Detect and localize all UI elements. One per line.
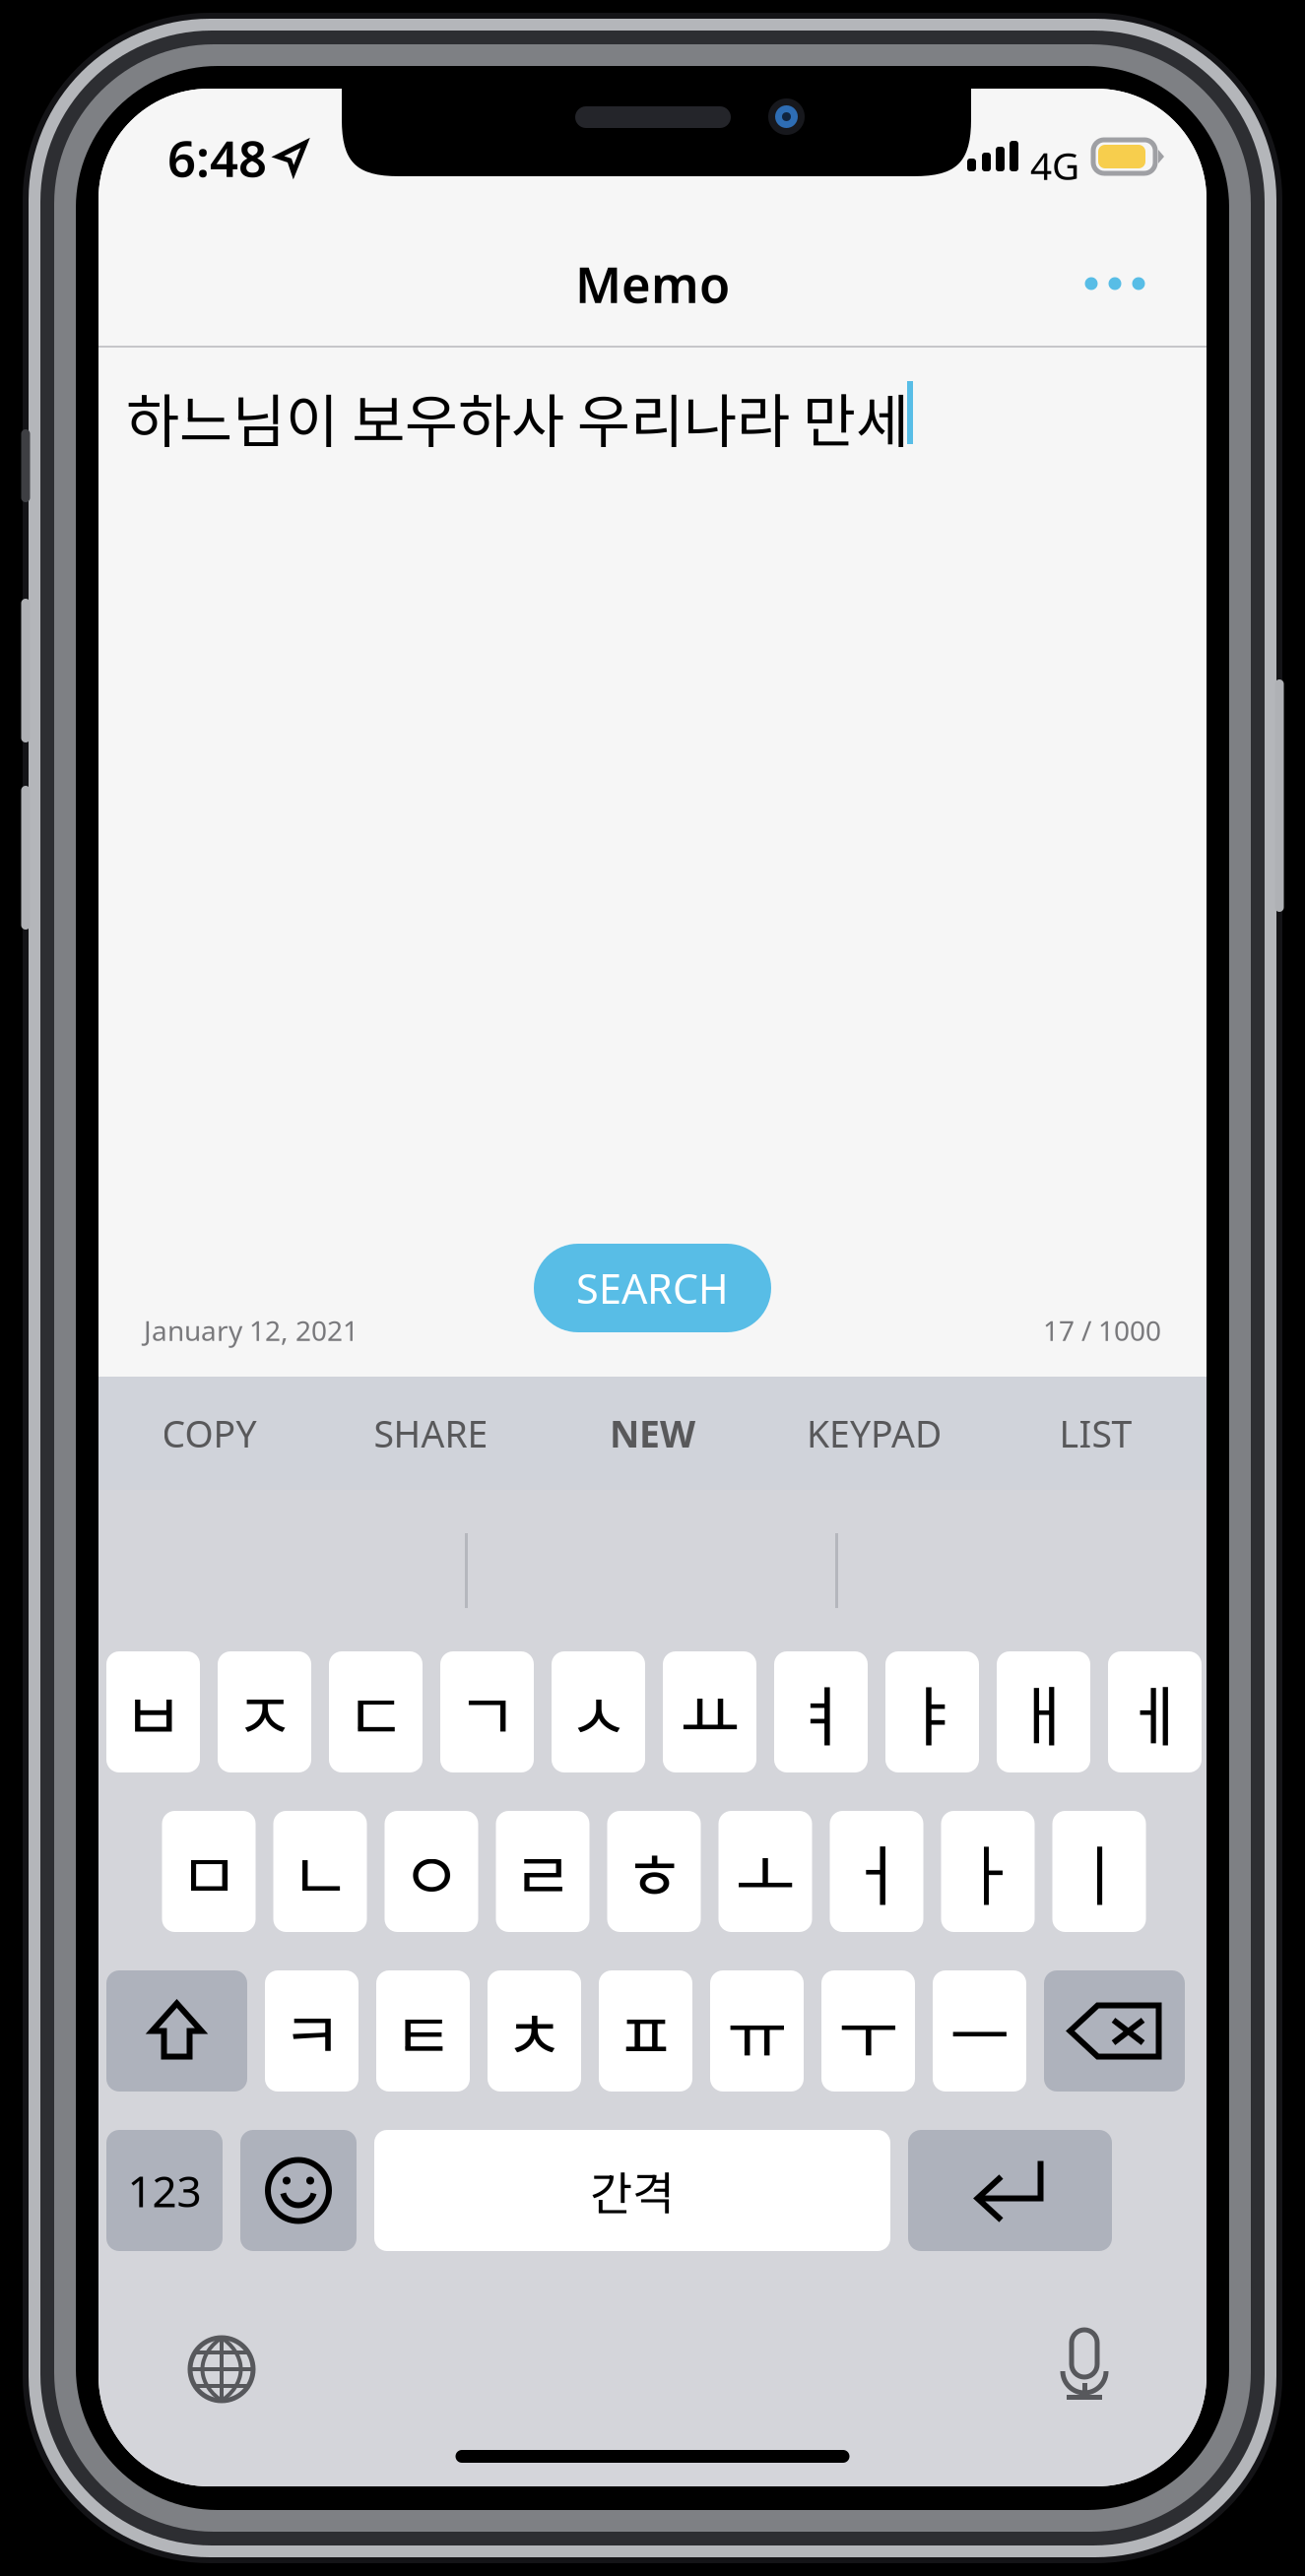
staticText: ㄱ bbox=[457, 1664, 517, 1759]
staticText: ㅡ bbox=[949, 1983, 1010, 2078]
button[interactable]: ㅌ bbox=[376, 1970, 470, 2092]
button[interactable]: NEW bbox=[542, 1377, 763, 1490]
staticText: ㅈ bbox=[234, 1664, 294, 1759]
button[interactable]: ㅔ bbox=[1108, 1651, 1202, 1772]
staticText: ㅛ bbox=[680, 1664, 740, 1759]
button[interactable]: ㅋ bbox=[265, 1970, 359, 2092]
staticText: ㅂ bbox=[123, 1664, 183, 1759]
staticText: LIST bbox=[1059, 1409, 1132, 1458]
button[interactable]: ㅑ bbox=[885, 1651, 979, 1772]
button[interactable]: ㅇ bbox=[385, 1811, 478, 1932]
button[interactable]: ㄷ bbox=[329, 1651, 423, 1772]
button[interactable]: ㅏ bbox=[941, 1811, 1035, 1932]
button[interactable]: ㄴ bbox=[273, 1811, 367, 1932]
staticText: 17 / 1000 bbox=[1043, 1312, 1161, 1349]
button[interactable]: Shift bbox=[106, 1970, 247, 2092]
button[interactable]: Emoji bbox=[240, 2130, 357, 2251]
button[interactable]: Delete bbox=[1044, 1970, 1185, 2092]
staticText: Memo bbox=[575, 251, 730, 317]
staticText: ㅍ bbox=[616, 1983, 676, 2078]
staticText: ㅣ bbox=[1069, 1824, 1129, 1919]
staticText: NEW bbox=[610, 1409, 695, 1458]
button[interactable]: 간격 bbox=[374, 2130, 890, 2251]
staticText: COPY bbox=[162, 1409, 257, 1458]
button[interactable]: SHARE bbox=[320, 1377, 542, 1490]
button[interactable]: ㅣ bbox=[1052, 1811, 1146, 1932]
button[interactable]: ㄱ bbox=[440, 1651, 534, 1772]
button[interactable]: ㅗ bbox=[718, 1811, 812, 1932]
button[interactable]: ㅈ bbox=[218, 1651, 311, 1772]
button[interactable]: ㅡ bbox=[933, 1970, 1026, 2092]
button[interactable]: 123 bbox=[106, 2130, 223, 2251]
button[interactable]: More options bbox=[1051, 244, 1179, 323]
button[interactable]: ㅛ bbox=[663, 1651, 756, 1772]
button[interactable]: ㅍ bbox=[599, 1970, 692, 2092]
button[interactable]: ㅕ bbox=[774, 1651, 868, 1772]
staticText: ㅏ bbox=[958, 1824, 1018, 1919]
button[interactable]: KEYPAD bbox=[763, 1377, 985, 1490]
staticText: 4G bbox=[1030, 140, 1079, 190]
staticText: ㅁ bbox=[179, 1824, 239, 1919]
button[interactable]: COPY bbox=[98, 1377, 320, 1490]
staticText: SEARCH bbox=[576, 1261, 729, 1315]
staticText: ㄹ bbox=[513, 1824, 573, 1919]
button[interactable]: ㄹ bbox=[496, 1811, 589, 1932]
staticText: ㄴ bbox=[290, 1824, 350, 1919]
button[interactable]: ㅂ bbox=[106, 1651, 200, 1772]
staticText: ㅎ bbox=[624, 1824, 684, 1919]
staticText: 간격 bbox=[590, 2157, 675, 2224]
button[interactable]: SEARCH bbox=[534, 1244, 771, 1332]
staticText: ㅗ bbox=[735, 1824, 795, 1919]
button[interactable]: ㅓ bbox=[830, 1811, 923, 1932]
staticText: ㅇ bbox=[401, 1824, 461, 1919]
staticText: ㅑ bbox=[902, 1664, 962, 1759]
staticText: SHARE bbox=[374, 1409, 488, 1458]
button[interactable]: ㅎ bbox=[607, 1811, 701, 1932]
staticText: ㅓ bbox=[847, 1824, 907, 1919]
staticText: ㅠ bbox=[727, 1983, 787, 2078]
staticText: ㅋ bbox=[282, 1983, 342, 2078]
staticText: ㅅ bbox=[568, 1664, 628, 1759]
staticText: ㅊ bbox=[504, 1983, 564, 2078]
button[interactable]: Dictation bbox=[1030, 2313, 1139, 2421]
staticText: ㅐ bbox=[1013, 1664, 1074, 1759]
staticText: 하느님이 보우하사 우리나라 만세 bbox=[126, 375, 909, 459]
button[interactable]: ㅊ bbox=[488, 1970, 581, 2092]
button[interactable]: ㅜ bbox=[821, 1970, 915, 2092]
button[interactable]: ㅁ bbox=[162, 1811, 256, 1932]
button[interactable]: ㅠ bbox=[710, 1970, 804, 2092]
staticText: 6:48 bbox=[167, 124, 267, 191]
button[interactable]: Next keyboard bbox=[167, 2315, 276, 2423]
button[interactable]: LIST bbox=[985, 1377, 1207, 1490]
staticText: January 12, 2021 bbox=[144, 1312, 359, 1349]
staticText: ㅜ bbox=[838, 1983, 898, 2078]
button[interactable]: ㅅ bbox=[552, 1651, 645, 1772]
staticText: KEYPAD bbox=[807, 1409, 942, 1458]
staticText: ㄷ bbox=[346, 1664, 406, 1759]
button[interactable]: ㅐ bbox=[997, 1651, 1090, 1772]
staticText: 123 bbox=[128, 2162, 201, 2219]
staticText: ㅔ bbox=[1125, 1664, 1185, 1759]
staticText: ㅕ bbox=[791, 1664, 851, 1759]
button[interactable]: Return bbox=[908, 2130, 1112, 2251]
staticText: ㅌ bbox=[393, 1983, 453, 2078]
